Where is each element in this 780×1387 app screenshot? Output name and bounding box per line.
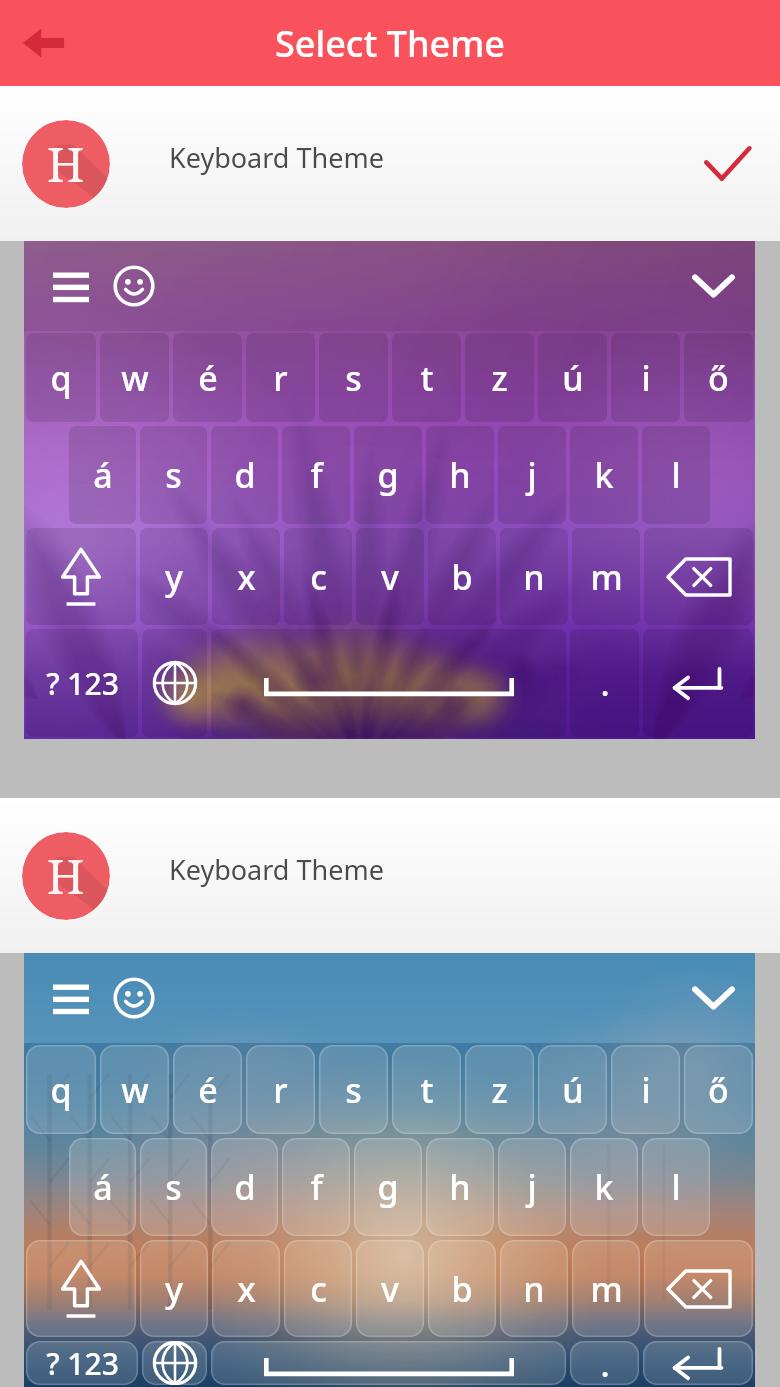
button[interactable]: Collapse keyboard — [687, 972, 739, 1024]
button[interactable]: Enter — [643, 1341, 753, 1385]
button[interactable]: f — [282, 426, 350, 524]
button[interactable]: t — [392, 333, 461, 422]
button[interactable]: k — [570, 426, 638, 524]
button[interactable]: Menu — [46, 261, 96, 311]
button[interactable]: z — [465, 1045, 534, 1134]
button[interactable]: ő — [684, 1045, 753, 1134]
button[interactable]: Backspace — [644, 1240, 753, 1337]
button[interactable]: m — [572, 528, 640, 625]
button[interactable]: s — [319, 1045, 388, 1134]
staticText: v — [381, 554, 399, 600]
button[interactable]: Back — [6, 6, 80, 80]
staticText: d — [234, 1164, 256, 1210]
staticText: Keyboard Theme — [169, 139, 384, 176]
button[interactable]: i — [611, 1045, 680, 1134]
button[interactable]: b — [428, 1240, 496, 1337]
button[interactable]: j — [498, 426, 566, 524]
button[interactable]: Menu — [24, 953, 755, 1387]
button[interactable]: q — [26, 1045, 96, 1134]
button[interactable]: Language — [142, 629, 207, 737]
staticText: g — [377, 452, 399, 498]
button[interactable]: ? 123 — [26, 629, 138, 737]
button[interactable]: x — [212, 1240, 280, 1337]
button[interactable]: d — [211, 426, 278, 524]
button[interactable]: H — [0, 86, 780, 241]
button[interactable]: h — [426, 426, 494, 524]
staticText: s — [345, 1067, 362, 1113]
button[interactable]: ú — [538, 333, 607, 422]
button[interactable]: w — [100, 1045, 169, 1134]
staticText: á — [93, 452, 113, 498]
button[interactable]: Shift — [26, 1240, 136, 1337]
button[interactable]: Shift — [26, 528, 136, 625]
button[interactable]: n — [500, 528, 568, 625]
button[interactable]: é — [173, 1045, 242, 1134]
staticText: b — [451, 554, 473, 600]
staticText: f — [310, 452, 323, 498]
button[interactable]: é — [173, 333, 242, 422]
staticText: c — [310, 554, 327, 600]
button[interactable]: Enter — [643, 629, 753, 737]
staticText: y — [165, 554, 183, 600]
button[interactable]: g — [354, 1138, 422, 1236]
button[interactable]: c — [284, 1240, 352, 1337]
button[interactable]: á — [69, 1138, 136, 1236]
button[interactable]: . — [570, 629, 639, 737]
button[interactable]: n — [500, 1240, 568, 1337]
staticText: b — [451, 1266, 473, 1312]
button[interactable]: v — [356, 1240, 424, 1337]
button[interactable]: Menu — [46, 973, 96, 1023]
button[interactable]: ? 123 — [26, 1341, 138, 1385]
button[interactable]: Emoji — [108, 972, 160, 1024]
button[interactable]: v — [356, 528, 424, 625]
button[interactable]: Collapse keyboard — [687, 260, 739, 312]
button[interactable]: c — [284, 528, 352, 625]
button[interactable]: r — [246, 333, 315, 422]
button[interactable]: l — [642, 1138, 710, 1236]
button[interactable]: m — [572, 1240, 640, 1337]
staticText: k — [594, 1164, 614, 1210]
button[interactable]: w — [100, 333, 169, 422]
button[interactable]: f — [282, 1138, 350, 1236]
button[interactable]: x — [212, 528, 280, 625]
button[interactable]: s — [140, 426, 207, 524]
button[interactable]: g — [354, 426, 422, 524]
button[interactable]: . — [570, 1341, 639, 1385]
button[interactable]: y — [140, 528, 208, 625]
button[interactable]: d — [211, 1138, 278, 1236]
staticText: . — [600, 660, 610, 706]
button[interactable]: s — [319, 333, 388, 422]
staticText: l — [671, 1164, 681, 1210]
button[interactable]: á — [69, 426, 136, 524]
button[interactable]: s — [140, 1138, 207, 1236]
button[interactable]: Language — [142, 1341, 207, 1385]
button[interactable]: H — [0, 798, 780, 953]
button[interactable]: Menu — [24, 241, 755, 739]
button[interactable]: z — [465, 333, 534, 422]
staticText: j — [527, 1164, 537, 1210]
button[interactable]: y — [140, 1240, 208, 1337]
staticText: j — [527, 452, 537, 498]
button[interactable]: h — [426, 1138, 494, 1236]
button[interactable]: j — [498, 1138, 566, 1236]
button[interactable]: t — [392, 1045, 461, 1134]
button[interactable]: Emoji — [108, 260, 160, 312]
staticText: g — [377, 1164, 399, 1210]
button[interactable]: Backspace — [644, 528, 753, 625]
button[interactable]: ő — [684, 333, 753, 422]
button[interactable]: k — [570, 1138, 638, 1236]
button[interactable]: Space — [211, 629, 566, 737]
staticText: H — [47, 844, 85, 908]
button[interactable]: q — [26, 333, 96, 422]
button[interactable]: r — [246, 1045, 315, 1134]
button[interactable]: i — [611, 333, 680, 422]
button[interactable]: Space — [211, 1341, 566, 1385]
staticText: d — [234, 452, 256, 498]
staticText: q — [50, 355, 72, 401]
staticText: r — [273, 355, 288, 401]
button[interactable]: ú — [538, 1045, 607, 1134]
staticText: H — [47, 132, 85, 196]
staticText: n — [523, 1266, 545, 1312]
button[interactable]: l — [642, 426, 710, 524]
button[interactable]: b — [428, 528, 496, 625]
